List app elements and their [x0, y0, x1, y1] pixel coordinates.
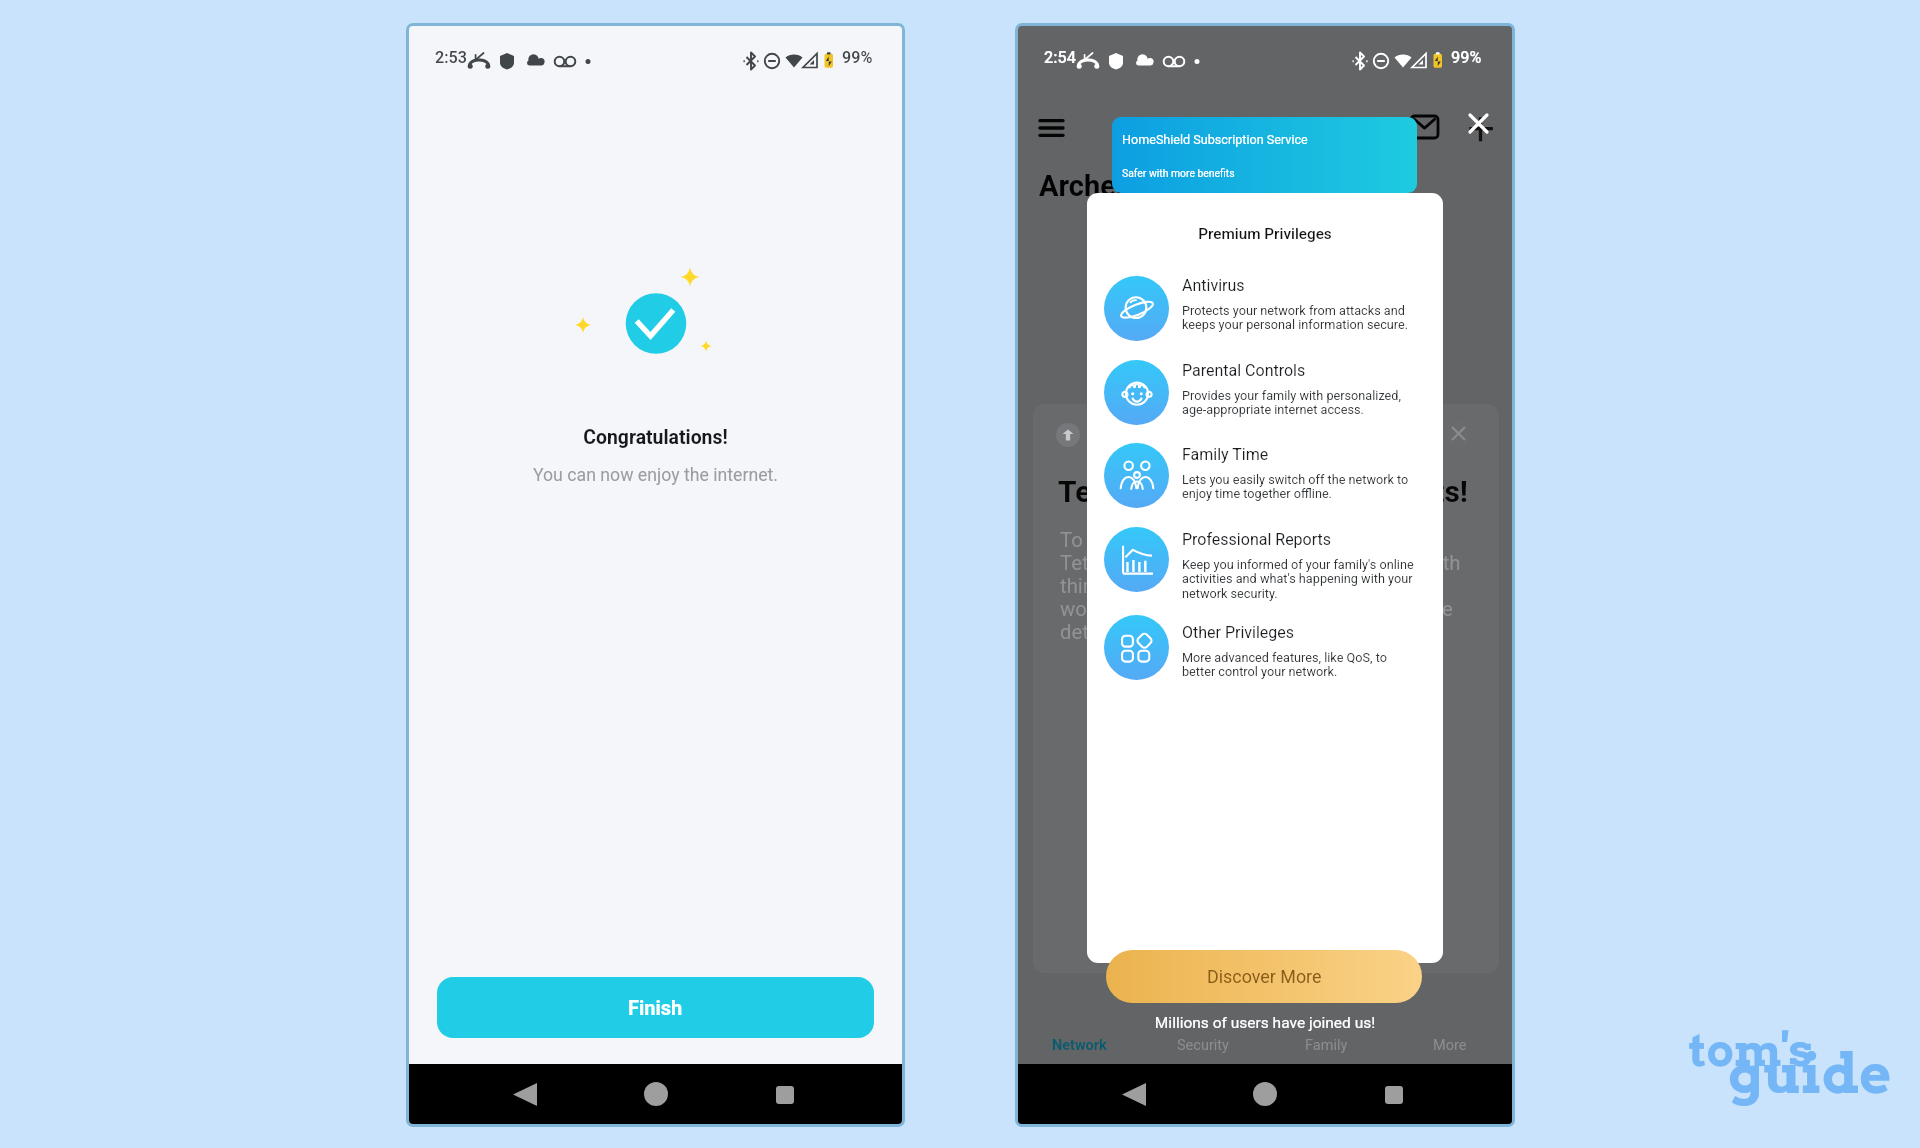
staticText: Family	[1305, 1037, 1348, 1054]
staticText: Archer AX11000	[1039, 169, 1255, 203]
button[interactable]: Back	[501, 1073, 549, 1115]
button[interactable]: HomeShield Subscription Service	[1112, 117, 1417, 193]
staticText: More advanced features, like QoS, to bet…	[1182, 650, 1387, 680]
button[interactable]: More	[1388, 1031, 1512, 1059]
staticText: To make it easier to control your networ…	[1060, 528, 1461, 644]
staticText: Network	[1052, 1037, 1107, 1054]
staticText: Millions of users have joined us!	[1018, 1014, 1512, 1032]
staticText: 2:54	[1044, 48, 1076, 67]
staticText: Tether Now Supports Widgets!	[1058, 474, 1468, 509]
button[interactable]: Home	[632, 1073, 680, 1115]
button[interactable]: Dismiss card	[1445, 420, 1472, 447]
button[interactable]: Recent apps	[761, 1074, 809, 1116]
staticText: Family Time	[1182, 445, 1269, 464]
button[interactable]: Security	[1141, 1031, 1264, 1059]
staticText: 99%	[1451, 48, 1482, 67]
button[interactable]: Discover More	[1106, 950, 1422, 1003]
button[interactable]: Finish	[437, 977, 874, 1038]
staticText: guide	[1728, 1040, 1892, 1106]
button[interactable]: Messages	[1405, 108, 1443, 146]
staticText: Lets you easily switch off the network t…	[1182, 472, 1409, 502]
staticText: Antivirus	[1182, 276, 1245, 295]
button[interactable]: Home	[1241, 1073, 1289, 1115]
staticText: Protects your network from attacks and k…	[1182, 303, 1409, 333]
staticText: 99%	[842, 48, 873, 67]
staticText: Safer with more benefits	[1122, 167, 1235, 179]
staticText: Premium Privileges	[1087, 225, 1443, 243]
staticText: More	[1433, 1037, 1467, 1054]
staticText: HomeShield Subscription Service	[1122, 132, 1308, 147]
button[interactable]: Recent apps	[1370, 1074, 1418, 1116]
staticText: Provides your family with personalized, …	[1182, 388, 1401, 418]
button[interactable]: Back	[1110, 1073, 1158, 1115]
staticText: Congratulations!	[409, 426, 902, 449]
button[interactable]: Close	[1459, 99, 1501, 141]
staticText: Other Privileges	[1182, 623, 1295, 642]
button[interactable]: Network	[1018, 1031, 1141, 1059]
staticText: tom's	[1689, 1023, 1813, 1077]
staticText: Parental Controls	[1182, 361, 1306, 380]
staticText: You can now enjoy the internet.	[409, 465, 902, 486]
staticText: Keep you informed of your family's onlin…	[1182, 557, 1414, 602]
button[interactable]: Family	[1264, 1031, 1388, 1059]
button[interactable]: Menu	[1032, 109, 1070, 147]
staticText: Discover More	[1207, 966, 1322, 987]
staticText: Finish	[628, 996, 683, 1019]
staticText: Professional Reports	[1182, 530, 1332, 549]
staticText: Security	[1177, 1037, 1229, 1054]
staticText: 2:53	[435, 48, 467, 67]
